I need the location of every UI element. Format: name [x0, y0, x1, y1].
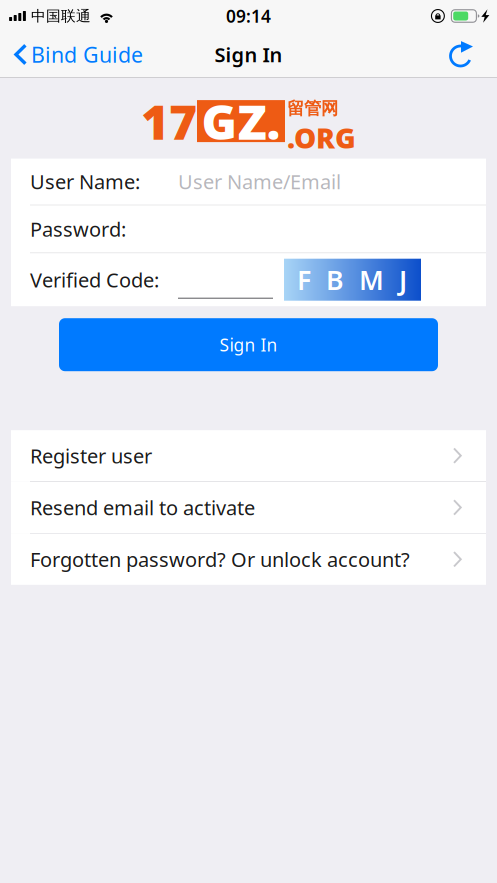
staticText: Sign In	[214, 41, 282, 68]
button[interactable]: Bind Guide	[0, 32, 153, 77]
staticText: J	[399, 262, 407, 297]
staticText: .ORG	[287, 119, 356, 156]
button[interactable]: Sign In	[59, 318, 438, 371]
staticText: Resend email to activate	[30, 494, 255, 521]
staticText: B	[326, 262, 344, 297]
staticText: Register user	[30, 442, 152, 469]
staticText: GZ.	[201, 89, 280, 153]
button[interactable]: Refresh	[436, 32, 497, 77]
button[interactable]: Resend email to activate	[11, 482, 486, 533]
staticText: M	[359, 262, 384, 297]
staticText: 09:14	[226, 4, 271, 27]
staticText: Password:	[30, 216, 126, 242]
staticText: 中国联通	[31, 7, 91, 25]
staticText: 留管网	[287, 98, 338, 119]
staticText: Verified Code:	[30, 266, 159, 293]
staticText: Sign In	[219, 333, 277, 356]
staticText: Forgotten password? Or unlock account?	[30, 546, 410, 573]
staticText: User Name:	[30, 168, 140, 195]
button[interactable]: Forgotten password? Or unlock account?	[11, 534, 486, 585]
button[interactable]: Register user	[11, 430, 486, 481]
staticText: 17	[141, 89, 197, 153]
staticText: F	[297, 262, 311, 297]
staticText: Bind Guide	[31, 40, 143, 69]
staticText: User Name/Email	[178, 168, 341, 195]
